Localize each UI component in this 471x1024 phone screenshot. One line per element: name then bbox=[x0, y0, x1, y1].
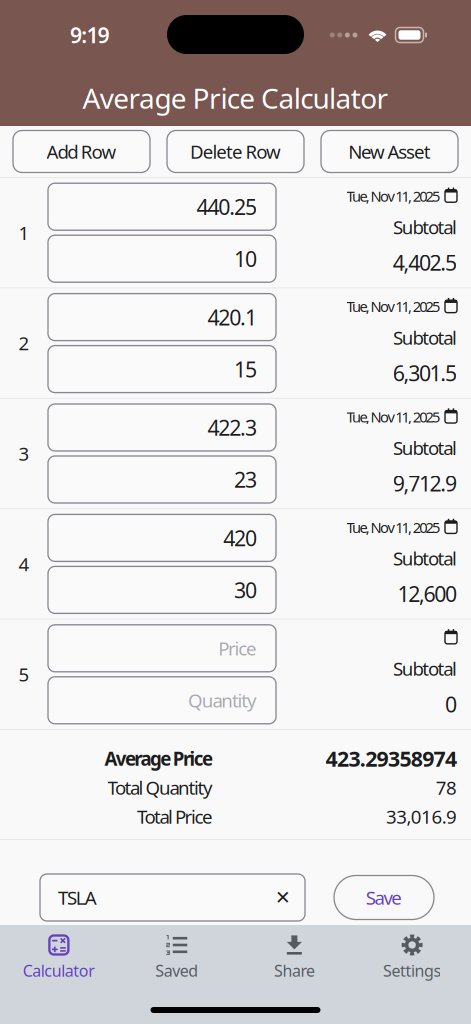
button[interactable]: Settings bbox=[353, 925, 471, 990]
staticText: Subtotal bbox=[393, 435, 457, 460]
staticText: Delete Row bbox=[190, 139, 281, 164]
staticText: Subtotal bbox=[393, 215, 457, 239]
staticText: 422.3 bbox=[207, 413, 257, 442]
staticText: Save bbox=[366, 885, 402, 910]
staticText: Total Quantity bbox=[107, 775, 213, 800]
staticText: 4,402.5 bbox=[393, 248, 457, 277]
staticText: 33,016.9 bbox=[386, 804, 457, 829]
staticText: Subtotal bbox=[393, 656, 457, 681]
staticText: 78 bbox=[436, 775, 457, 800]
staticText: 4 bbox=[18, 551, 29, 576]
staticText: Tue, Nov 11, 2025 bbox=[347, 407, 440, 427]
staticText: 420 bbox=[223, 524, 257, 552]
staticText: Tue, Nov 11, 2025 bbox=[347, 517, 440, 537]
button[interactable]: Calculator bbox=[0, 925, 118, 990]
staticText: 423.29358974 bbox=[326, 744, 457, 773]
staticText: 420.1 bbox=[207, 303, 257, 331]
staticText: 0 bbox=[445, 690, 457, 718]
button[interactable]: Saved bbox=[118, 925, 236, 990]
staticText: 5 bbox=[18, 662, 29, 687]
staticText: Add Row bbox=[47, 139, 116, 164]
staticText: 2 bbox=[18, 331, 29, 355]
staticText: Tue, Nov 11, 2025 bbox=[347, 186, 440, 206]
staticText: 6,301.5 bbox=[393, 359, 457, 387]
staticText: 30 bbox=[234, 576, 257, 604]
staticText: Subtotal bbox=[393, 546, 457, 571]
staticText: Average Price bbox=[104, 746, 213, 771]
staticText: 440.25 bbox=[196, 192, 257, 221]
staticText: ✕ bbox=[275, 887, 291, 908]
staticText: Price bbox=[218, 636, 257, 661]
staticText: Total Price bbox=[137, 804, 213, 829]
staticText: Quantity bbox=[188, 688, 257, 713]
button[interactable]: Delete Row bbox=[167, 130, 304, 172]
button[interactable]: Share bbox=[235, 925, 353, 990]
staticText: 12,600 bbox=[397, 579, 457, 608]
staticText: Subtotal bbox=[393, 325, 457, 350]
staticText: Settings bbox=[383, 960, 441, 981]
staticText: 23 bbox=[234, 465, 257, 494]
staticText: Calculator bbox=[23, 960, 95, 981]
staticText: 9,712.9 bbox=[393, 469, 457, 497]
staticText: 1 bbox=[18, 220, 29, 245]
button[interactable]: New Asset bbox=[321, 130, 458, 172]
staticText: New Asset bbox=[348, 139, 431, 164]
staticText: 9:19 bbox=[70, 21, 110, 49]
staticText: Share bbox=[274, 960, 315, 981]
staticText: Average Price Calculator bbox=[82, 79, 389, 117]
staticText: 15 bbox=[234, 355, 257, 383]
staticText: TSLA bbox=[58, 885, 97, 910]
staticText: Tue, Nov 11, 2025 bbox=[347, 297, 440, 316]
button[interactable]: Clear bbox=[270, 881, 296, 913]
staticText: Saved bbox=[155, 960, 198, 981]
button[interactable]: Save bbox=[334, 875, 434, 919]
button[interactable]: Add Row bbox=[13, 130, 150, 172]
staticText: 3 bbox=[18, 441, 29, 466]
staticText: 10 bbox=[234, 244, 257, 273]
